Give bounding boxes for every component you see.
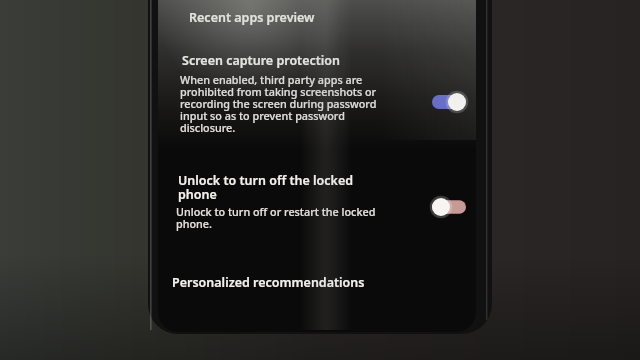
staticText: Recent apps preview (189, 9, 419, 26)
button[interactable] (158, 170, 476, 242)
staticText: Unlock to turn off or restart the locked… (176, 204, 431, 231)
button[interactable] (158, 272, 476, 300)
button[interactable]: Screen capture protection, on (432, 93, 466, 111)
button[interactable] (158, 48, 476, 152)
staticText: When enabled, third party apps are prohi… (180, 72, 430, 135)
staticText: Screen capture protection (182, 52, 422, 69)
staticText: Personalized recommendations (172, 274, 432, 291)
button[interactable]: Unlock to turn off the locked phone, off (432, 198, 466, 216)
staticText: Unlock to turn off the locked phone (178, 172, 408, 203)
